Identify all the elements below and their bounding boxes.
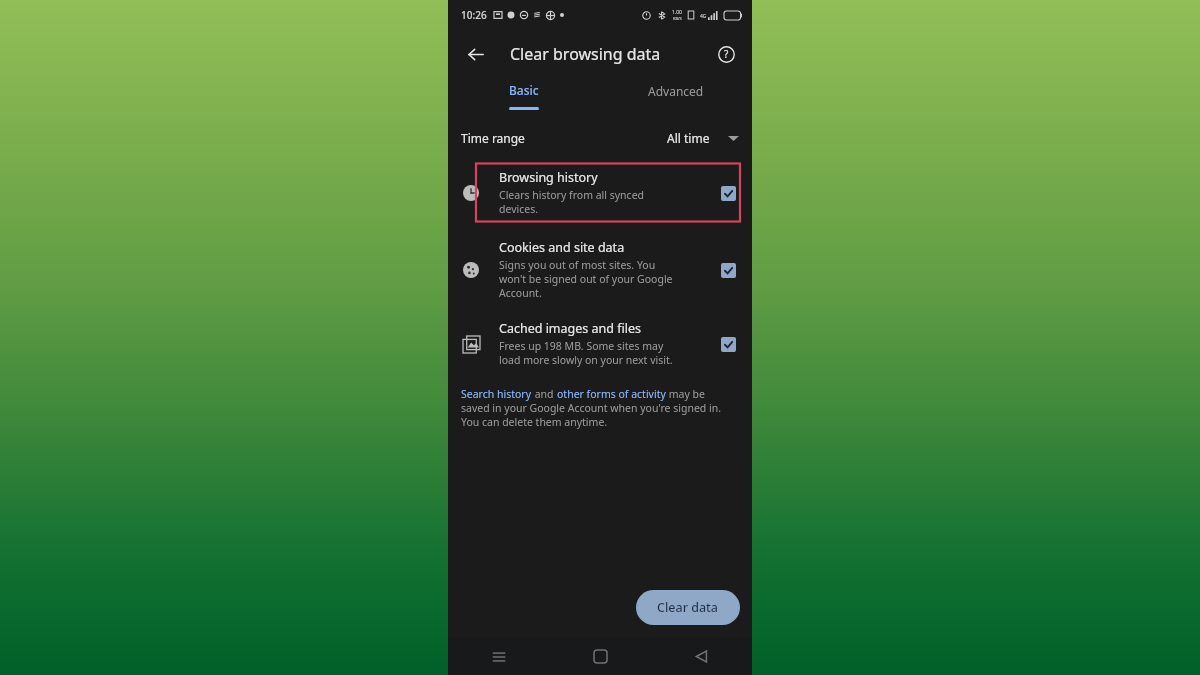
staticText: Advanced — [648, 83, 704, 99]
staticText: Time range — [461, 130, 525, 146]
staticText: and — [532, 387, 557, 401]
staticText: saved in your Google Account when you're… — [461, 401, 722, 415]
staticText: All time — [667, 130, 710, 146]
staticText: Frees up 198 MB. Some sites may — [499, 339, 664, 353]
staticText: may be — [666, 387, 705, 401]
button[interactable]: Search history — [461, 387, 532, 401]
staticText: 4G — [700, 13, 707, 20]
staticText: ? — [724, 47, 729, 61]
staticText: Account. — [499, 286, 542, 300]
button[interactable]: Toggle Cookies and site data — [714, 256, 742, 284]
staticText: Browsing history — [499, 169, 598, 186]
staticText: Clear data — [657, 599, 719, 616]
button[interactable]: other forms of activity — [557, 387, 666, 401]
button[interactable]: Toggle Cached images and files — [714, 330, 742, 358]
button[interactable]: Basic — [448, 78, 600, 114]
staticText: You can delete them anytime. — [461, 415, 608, 429]
button[interactable]: Help — [710, 38, 742, 70]
staticText: load more slowly on your next visit. — [499, 353, 673, 367]
button[interactable]: Clear data — [636, 590, 740, 625]
button[interactable]: Back — [458, 37, 492, 71]
staticText: Cookies and site data — [499, 239, 625, 256]
staticText: Basic — [509, 82, 539, 98]
button[interactable]: Advanced — [600, 78, 752, 114]
staticText: KB/S — [673, 16, 682, 21]
button[interactable]: Cookies and site data — [448, 232, 752, 307]
button[interactable]: Time range — [448, 125, 752, 151]
staticText: Clears history from all synced — [499, 188, 645, 202]
button[interactable]: Cached images and files — [448, 313, 752, 374]
staticText: 10:26 — [461, 8, 487, 22]
staticText: devices. — [499, 202, 539, 216]
button[interactable]: Toggle Browsing history — [714, 179, 742, 207]
staticText: won't be signed out of your Google — [499, 272, 673, 286]
button[interactable]: Browsing history — [448, 162, 752, 223]
staticText: Signs you out of most sites. You — [499, 258, 656, 272]
staticText: Clear browsing data — [510, 43, 661, 65]
button[interactable]: Home — [550, 638, 651, 675]
staticText: Cached images and files — [499, 320, 641, 337]
button[interactable]: Back — [651, 638, 752, 675]
staticText: 1.00 — [672, 9, 682, 16]
button[interactable]: Recents — [448, 638, 550, 675]
